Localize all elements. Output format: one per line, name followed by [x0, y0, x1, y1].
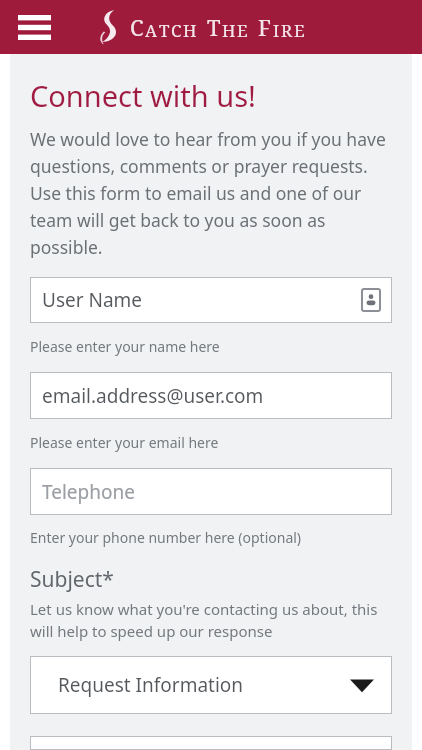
staticText: User Name: [42, 287, 143, 313]
staticText: A: [145, 19, 159, 42]
staticText: Enter your phone number here (optional): [30, 528, 302, 547]
staticText: I: [273, 19, 281, 42]
staticText: C: [130, 12, 145, 42]
button[interactable]: Open subject list: [350, 677, 374, 693]
staticText: Connect with us!: [30, 76, 256, 115]
staticText: E: [294, 19, 306, 42]
button[interactable]: Request Information: [30, 656, 392, 714]
button[interactable]: Message*: [30, 736, 392, 750]
button[interactable]: C: [96, 8, 306, 46]
staticText: T: [159, 19, 171, 42]
staticText: Subject*: [30, 565, 114, 594]
staticText: R: [281, 19, 294, 42]
button[interactable]: Telephone: [30, 468, 392, 515]
staticText: Please enter your email here: [30, 433, 219, 452]
button[interactable]: Autofill contact: [362, 289, 380, 311]
staticText: Message*: [42, 746, 132, 750]
staticText: email.address@user.com: [42, 383, 264, 409]
staticText: T: [207, 12, 222, 42]
staticText: We would love to hear from you if you ha…: [30, 127, 392, 259]
staticText: C: [171, 19, 183, 42]
staticText: Please enter your name here: [30, 337, 220, 356]
staticText: Let us know what you're contacting us ab…: [30, 599, 392, 642]
button[interactable]: User Name: [30, 277, 392, 323]
button[interactable]: Open navigation menu: [14, 11, 54, 43]
staticText: H: [183, 19, 198, 42]
staticText: H: [222, 19, 237, 42]
button[interactable]: email.address@user.com: [30, 372, 392, 419]
staticText: Telephone: [42, 479, 135, 505]
staticText: Request Information: [58, 672, 244, 698]
staticText: F: [258, 12, 273, 42]
staticText: E: [237, 19, 249, 42]
